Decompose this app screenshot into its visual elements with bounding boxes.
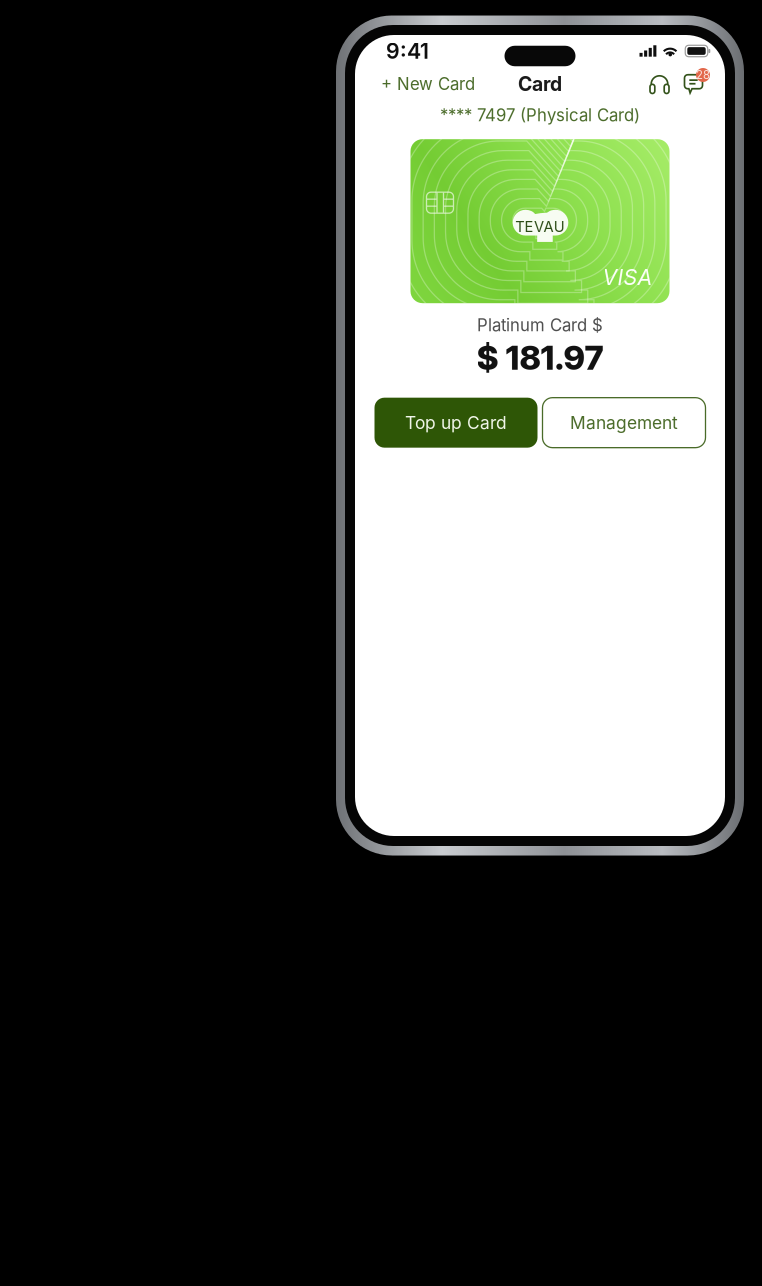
staticText: Management	[570, 412, 678, 433]
button[interactable]: Top up Card	[374, 398, 537, 448]
staticText: **** 7497 (Physical Card)	[440, 105, 640, 125]
button[interactable]: + New Card	[377, 67, 479, 101]
staticText: Card	[518, 72, 562, 96]
staticText: Platinum Card $	[477, 315, 603, 335]
button[interactable]: Support	[646, 70, 673, 97]
staticText: TEVAU	[515, 218, 565, 235]
button[interactable]: Management	[542, 398, 705, 448]
staticText: Top up Card	[405, 412, 507, 433]
button[interactable]: Messages	[680, 70, 707, 97]
staticText: VISA	[602, 264, 652, 290]
staticText: + New Card	[381, 74, 475, 94]
staticText: $ 181.97	[476, 337, 603, 378]
staticText: 9:41	[386, 38, 429, 64]
staticText: 28	[696, 68, 710, 82]
